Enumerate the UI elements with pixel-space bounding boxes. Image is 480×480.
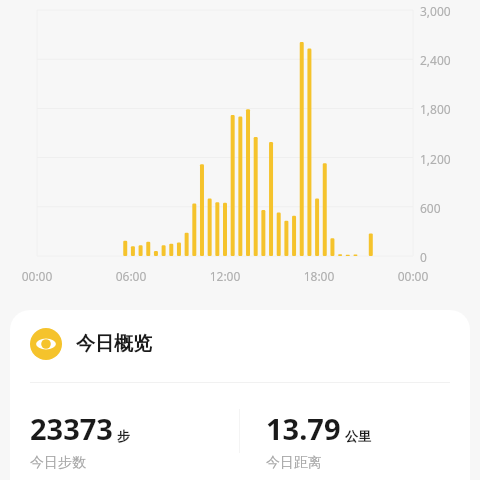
staticText: 23373 bbox=[30, 409, 113, 448]
staticText: 12:00 bbox=[203, 268, 247, 284]
staticText: 1,200 bbox=[420, 151, 451, 167]
staticText: 今日距离 bbox=[266, 454, 322, 472]
staticText: 公里 bbox=[345, 428, 371, 444]
button[interactable]: 23373 bbox=[30, 409, 239, 472]
button[interactable]: Today overview bbox=[10, 310, 470, 480]
staticText: 00:00 bbox=[391, 268, 435, 284]
staticText: 今日步数 bbox=[30, 454, 86, 472]
button[interactable]: 13.79 bbox=[266, 409, 450, 472]
staticText: 2,400 bbox=[420, 52, 451, 68]
staticText: 13.79 bbox=[266, 409, 341, 448]
staticText: 1,800 bbox=[420, 101, 451, 117]
staticText: 步 bbox=[117, 428, 130, 444]
staticText: 600 bbox=[420, 200, 441, 216]
staticText: 06:00 bbox=[109, 268, 153, 284]
staticText: 今日概览 bbox=[76, 332, 152, 356]
staticText: 18:00 bbox=[297, 268, 341, 284]
staticText: 3,000 bbox=[420, 3, 451, 19]
staticText: 0 bbox=[420, 249, 427, 265]
staticText: 00:00 bbox=[15, 268, 59, 284]
other: Today overview bbox=[30, 328, 62, 360]
